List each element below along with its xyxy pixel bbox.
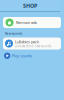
staticText: Lullabies pack [15, 39, 39, 44]
staticText: SHOP [23, 2, 37, 9]
button[interactable]: Lullabies pack [3, 37, 61, 49]
staticText: New sounds [5, 32, 22, 35]
button[interactable]: Remove ads [3, 17, 61, 28]
staticText: unlocks three new sounds [15, 44, 51, 48]
button[interactable]: Play sounds [4, 52, 64, 59]
staticText: Play sounds [12, 53, 32, 58]
staticText: Remove ads [16, 20, 37, 25]
